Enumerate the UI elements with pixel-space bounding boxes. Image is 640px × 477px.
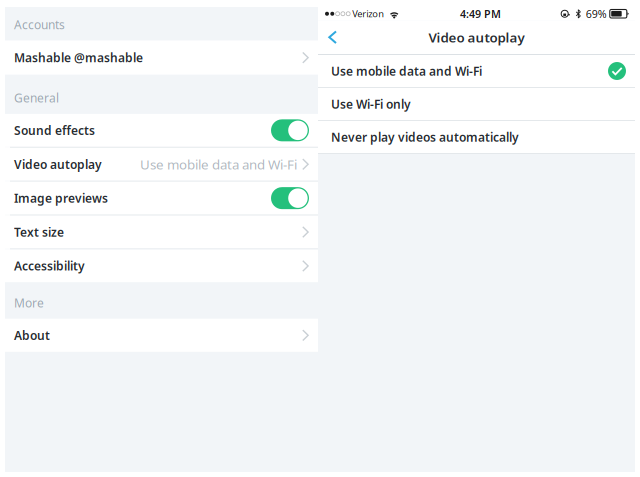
staticText: 69% [586, 7, 607, 21]
staticText: About [14, 327, 50, 343]
staticText: Verizon [352, 8, 384, 20]
button[interactable]: Never play videos automatically [318, 121, 635, 153]
staticText: Accessibility [14, 258, 85, 274]
staticText: Never play videos automatically [331, 129, 519, 145]
button[interactable]: Video autoplay [5, 148, 318, 181]
staticText: Use mobile data and Wi-Fi [331, 63, 482, 79]
button[interactable]: Image previews [5, 182, 318, 215]
button[interactable]: About [5, 319, 318, 352]
button[interactable]: Use mobile data and Wi-Fi [318, 55, 635, 87]
button[interactable]: Sound effects [5, 114, 318, 147]
button[interactable]: Back [318, 20, 351, 54]
staticText: Video autoplay [428, 28, 524, 46]
staticText: Text size [14, 224, 64, 240]
staticText: Use mobile data and Wi-Fi [140, 155, 297, 173]
staticText: More [14, 295, 44, 311]
staticText: Sound effects [14, 122, 95, 138]
staticText: Accounts [14, 17, 65, 32]
staticText: Use Wi-Fi only [331, 96, 411, 112]
staticText: General [14, 90, 59, 106]
staticText: Mashable @mashable [14, 50, 143, 66]
staticText: Video autoplay [14, 156, 102, 172]
button[interactable]: Accessibility [5, 249, 318, 282]
staticText: Image previews [14, 190, 108, 206]
button[interactable]: Mashable @mashable [5, 40, 318, 75]
button[interactable]: Text size [5, 216, 318, 248]
staticText: 4:49 PM [460, 7, 501, 21]
button[interactable]: Use Wi-Fi only [318, 88, 635, 120]
